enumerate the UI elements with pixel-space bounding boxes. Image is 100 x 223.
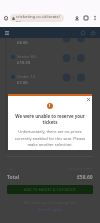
- button[interactable]: Close: [85, 96, 92, 103]
- staticText: £7.00: [17, 80, 28, 85]
- staticText: Standard: [17, 34, 35, 40]
- staticText: Senior 65+: [17, 54, 38, 60]
- staticText: £10.30: [17, 60, 31, 65]
- button[interactable]: cricketing.co.uk/seats/82: [10, 14, 64, 22]
- button[interactable]: Under 13: [11, 74, 36, 85]
- button[interactable]: Tabs: [81, 13, 90, 22]
- staticText: Delivery fees: [67, 166, 93, 172]
- button[interactable]: Download: [72, 13, 81, 22]
- button[interactable]: Menu: [3, 29, 10, 36]
- button[interactable]: Account: [79, 29, 87, 37]
- button[interactable]: Senior 65+: [11, 54, 38, 65]
- staticText: !: [49, 103, 51, 109]
- button[interactable]: ADD TO BASKET & CHECKOUT: [7, 185, 93, 194]
- staticText: cricketing.co.uk/seats/82: [16, 14, 64, 22]
- staticText: £8.00: [17, 40, 28, 45]
- button[interactable]: Standard: [11, 34, 35, 45]
- staticText: Under 13: [17, 74, 36, 80]
- button[interactable]: More options: [90, 13, 99, 22]
- staticText: ADD TO BASKET & CHECKOUT: [24, 187, 76, 192]
- button[interactable]: Basket: [89, 29, 97, 37]
- button[interactable]: Search again: [7, 207, 93, 212]
- staticText: Unfortunately, there are no prices curre…: [12, 129, 88, 147]
- staticText: Total: [7, 174, 20, 181]
- button[interactable]: Home: [1, 13, 10, 22]
- staticText: £58.60: [77, 174, 93, 181]
- staticText: We were unable to reserve your tickets: [12, 113, 88, 125]
